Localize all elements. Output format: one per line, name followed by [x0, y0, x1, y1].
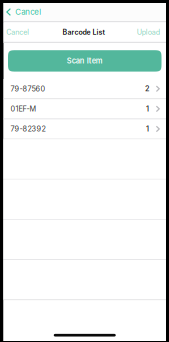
staticText: 2 [145, 84, 149, 93]
button[interactable]: Cancel [3, 3, 47, 21]
staticText: Cancel [15, 7, 41, 17]
button[interactable]: 01EF-M [3, 99, 166, 119]
staticText: 79-82392 [10, 124, 45, 133]
staticText: 1 [146, 125, 149, 133]
staticText: 01EF-M [10, 104, 36, 113]
staticText: Scan Item [67, 56, 103, 65]
button[interactable]: Cancel [2, 22, 33, 42]
staticText: Barcode List [62, 28, 104, 36]
button[interactable]: 79-87560 [3, 79, 166, 99]
staticText: 79-87560 [10, 84, 45, 93]
staticText: Cancel [6, 28, 29, 36]
button[interactable]: 79-82392 [3, 119, 166, 139]
staticText: 1 [146, 104, 149, 113]
button[interactable]: Upload [133, 22, 164, 42]
button[interactable]: Scan Item [8, 50, 161, 72]
staticText: Upload [137, 28, 160, 36]
